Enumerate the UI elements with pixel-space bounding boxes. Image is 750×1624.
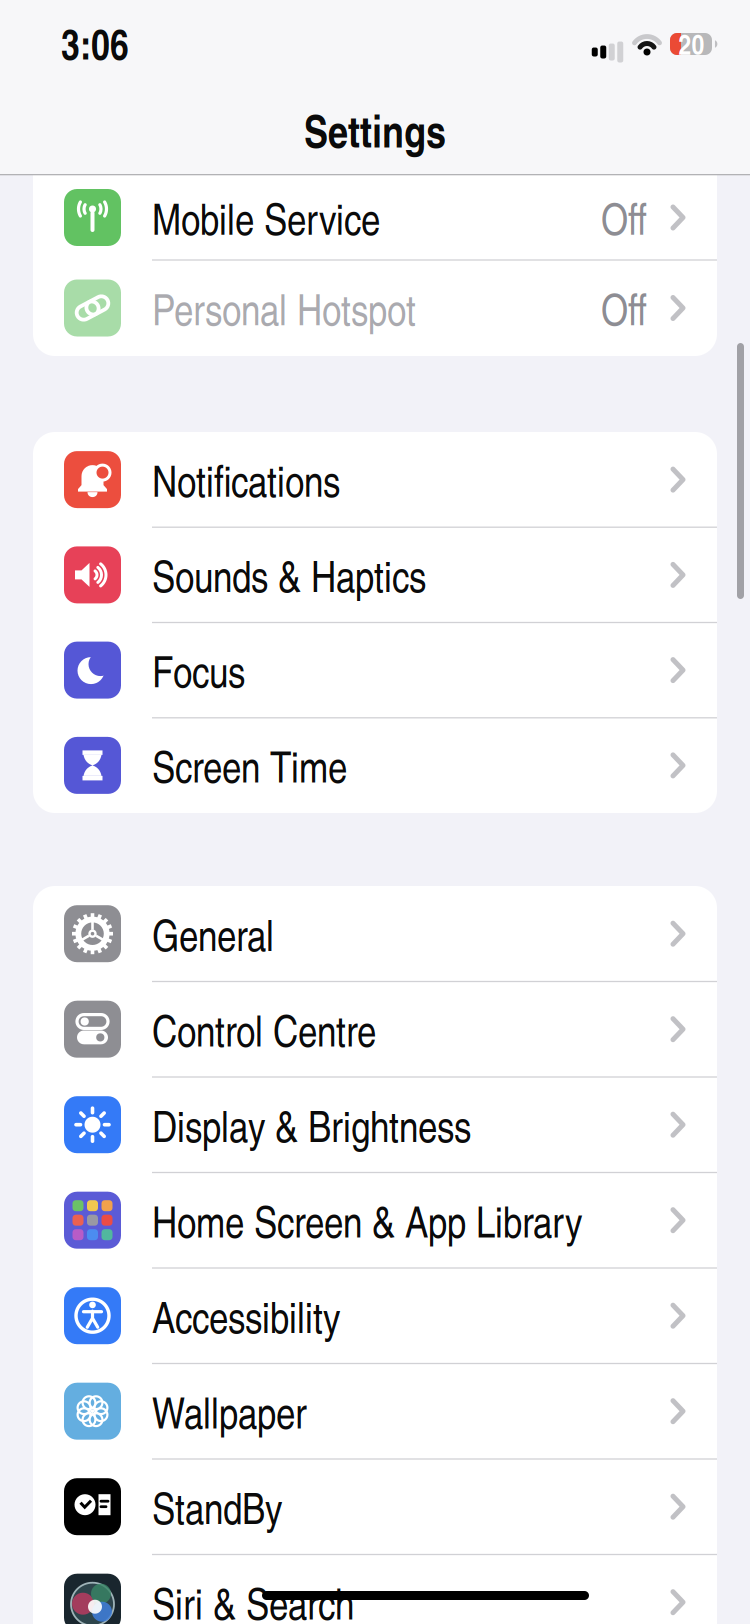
staticText: Sounds & Haptics [152,546,426,603]
staticText: Off [601,189,647,246]
staticText: Settings [304,100,446,160]
staticText: Off [601,279,647,336]
button[interactable]: Personal Hotspot [33,260,717,355]
button[interactable]: Notifications [33,432,717,527]
staticText: Control Centre [152,1001,376,1058]
staticText: 20 [678,24,704,63]
staticText: Notifications [152,451,340,508]
button[interactable]: Wallpaper [33,1364,717,1459]
button[interactable]: Screen Time [33,718,717,813]
button[interactable]: Sounds & Haptics [33,527,717,622]
button[interactable]: Home Screen & App Library [33,1173,717,1268]
staticText: Home Screen & App Library [152,1192,582,1249]
button[interactable]: Control Centre [33,982,717,1077]
staticText: Display & Brightness [152,1096,471,1153]
staticText: Siri & Search [152,1574,354,1624]
staticText: Mobile Service [152,189,380,246]
staticText: Screen Time [152,737,347,794]
button[interactable]: Display & Brightness [33,1077,717,1172]
staticText: Focus [152,642,245,699]
staticText: Accessibility [152,1287,340,1344]
staticText: Personal Hotspot [152,279,416,336]
button[interactable]: General [33,886,717,981]
button[interactable]: Mobile Service [33,170,717,265]
staticText: Wallpaper [152,1383,307,1440]
staticText: General [152,905,274,962]
staticText: StandBy [152,1478,282,1535]
button[interactable]: Accessibility [33,1268,717,1363]
button[interactable]: Focus [33,623,717,718]
button[interactable]: StandBy [33,1459,717,1554]
staticText: 3:06 [61,14,129,71]
button[interactable]: Siri & Search [33,1555,717,1624]
